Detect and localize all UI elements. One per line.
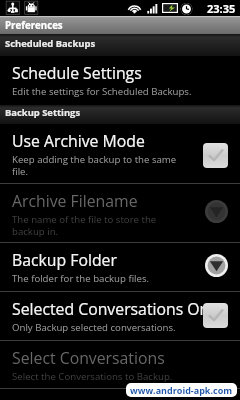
button[interactable]: Toggle checkbox — [203, 303, 228, 328]
button[interactable]: Open list — [205, 200, 228, 223]
staticText: Edit the settings for Scheduled Backups. — [12, 85, 236, 98]
staticText: Schedule Settings — [12, 62, 208, 84]
staticText: 23:35 — [207, 1, 236, 16]
staticText: Keep adding the backup to the same file. — [12, 153, 184, 178]
staticText: Use Archive Mode — [12, 130, 208, 152]
button[interactable]: Toggle checkbox — [203, 143, 228, 168]
staticText: Scheduled Backups — [5, 37, 96, 50]
button[interactable]: Archive Filename — [0, 184, 240, 242]
staticText: www.android-apk.com — [130, 384, 233, 396]
staticText: Archive Filename — [12, 190, 208, 212]
staticText: Selected Conversations Only — [12, 298, 208, 320]
button[interactable]: Selected Conversations Only — [0, 292, 240, 340]
button[interactable]: Select Conversations — [0, 341, 240, 388]
staticText: The folder for the backup files. — [12, 272, 184, 285]
staticText: Preferences — [5, 19, 63, 32]
button[interactable]: Use Archive Mode — [0, 124, 240, 183]
staticText: Backup Folder — [12, 249, 208, 271]
staticText: Backup Settings — [5, 106, 81, 119]
staticText: Only Backup selected conversations. — [12, 321, 184, 334]
staticText: Select Conversations — [12, 347, 208, 369]
staticText: The name of the file to store the backup… — [12, 213, 184, 238]
staticText: Select the Conversations to Backup. — [12, 370, 236, 383]
button[interactable]: Open list — [205, 254, 228, 277]
button[interactable]: Schedule Settings — [0, 56, 240, 105]
button[interactable]: Backup Folder — [0, 243, 240, 291]
